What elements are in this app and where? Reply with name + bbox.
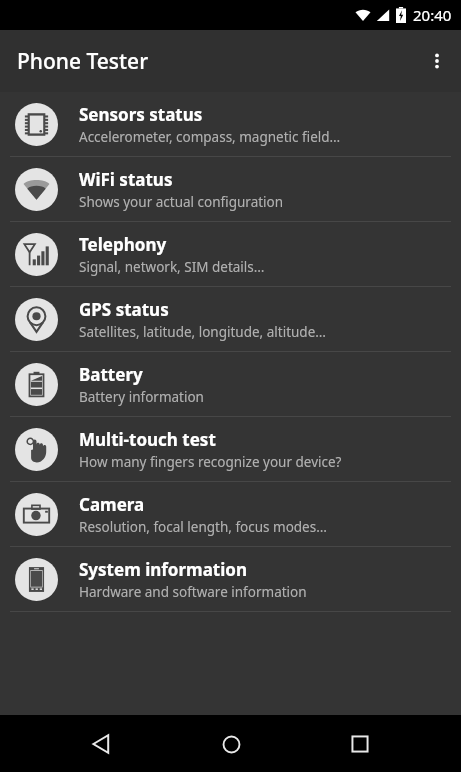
button[interactable]: Sensors status <box>0 92 461 156</box>
staticText: Telephony <box>79 233 167 256</box>
button[interactable]: Camera <box>0 482 461 546</box>
button[interactable]: Recent apps <box>332 716 388 772</box>
button[interactable]: Battery <box>0 352 461 416</box>
staticText: System information <box>79 558 247 581</box>
staticText: Signal, network, SIM details… <box>79 258 265 276</box>
staticText: Battery <box>79 363 143 386</box>
staticText: Satellites, latitude, longitude, altitud… <box>79 323 326 341</box>
staticText: WiFi status <box>79 168 173 191</box>
staticText: Multi-touch test <box>79 428 216 451</box>
button[interactable]: Telephony <box>0 222 461 286</box>
button[interactable]: Home <box>203 716 259 772</box>
staticText: Hardware and software information <box>79 583 307 601</box>
button[interactable]: Multi-touch test <box>0 417 461 481</box>
button[interactable]: Back <box>73 716 129 772</box>
button[interactable]: More options <box>413 37 461 85</box>
staticText: Sensors status <box>79 103 203 126</box>
staticText: Battery information <box>79 388 204 406</box>
staticText: GPS status <box>79 298 169 321</box>
button[interactable]: WiFi status <box>0 157 461 221</box>
staticText: Camera <box>79 493 145 516</box>
staticText: Shows your actual configuration <box>79 193 284 211</box>
button[interactable]: GPS status <box>0 287 461 351</box>
staticText: 20:40 <box>413 5 452 25</box>
staticText: Phone Tester <box>17 47 149 76</box>
staticText: Resolution, focal length, focus modes… <box>79 518 327 536</box>
button[interactable]: System information <box>0 547 461 611</box>
staticText: How many fingers recognize your device? <box>79 453 342 471</box>
staticText: Accelerometer, compass, magnetic field… <box>79 128 341 146</box>
